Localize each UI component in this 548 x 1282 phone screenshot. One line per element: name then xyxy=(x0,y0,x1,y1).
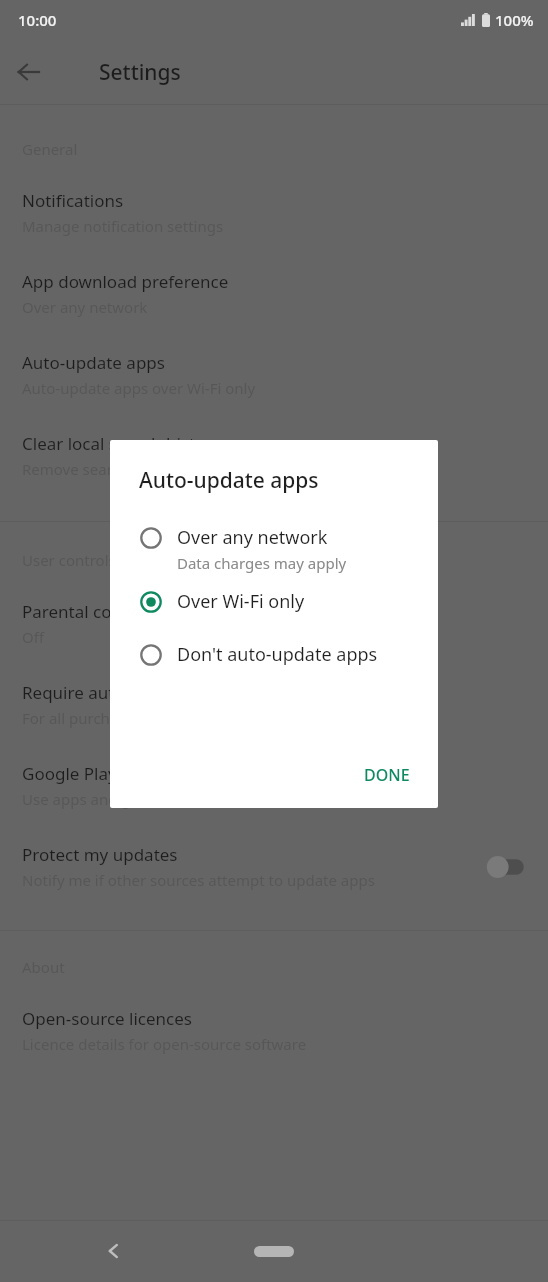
staticText: Open-source licences xyxy=(22,1007,192,1030)
staticText: Auto-update apps over Wi-Fi only xyxy=(22,378,256,398)
staticText: Settings xyxy=(99,58,181,87)
staticText: Remove searches you've performed on this… xyxy=(22,459,375,479)
button[interactable]: Don't auto-update apps xyxy=(110,636,438,673)
staticText: Off xyxy=(22,627,45,647)
staticText: User controls xyxy=(22,550,116,570)
button[interactable]: Protect my updates xyxy=(0,833,548,914)
staticText: General xyxy=(22,139,78,159)
button[interactable]: Home xyxy=(254,1246,294,1257)
button[interactable]: Back xyxy=(94,1231,134,1271)
staticText: Auto-update apps xyxy=(139,466,319,495)
staticText: Require authentication for purchases xyxy=(22,681,319,704)
button[interactable]: Protect my updates xyxy=(486,854,530,880)
staticText: Protect my updates xyxy=(22,843,178,866)
staticText: About xyxy=(22,957,65,977)
staticText: Over any network xyxy=(22,297,148,317)
button[interactable]: Auto-update apps xyxy=(0,341,548,422)
staticText: Over any network xyxy=(177,525,328,550)
button[interactable]: Clear local search history xyxy=(0,422,548,503)
staticText: 100% xyxy=(495,10,534,30)
button[interactable]: Over any network xyxy=(110,519,438,579)
staticText: Clear local search history xyxy=(22,432,222,455)
staticText: Over Wi-Fi only xyxy=(177,589,305,614)
staticText: Don't auto-update apps xyxy=(177,642,378,667)
staticText: DONE xyxy=(364,764,410,786)
button[interactable]: DONE xyxy=(350,754,424,796)
button[interactable]: Require authentication for purchases xyxy=(0,671,548,752)
staticText: Notify me if other sources attempt to up… xyxy=(22,870,375,890)
staticText: 10:00 xyxy=(18,10,57,30)
staticText: Data charges may apply xyxy=(177,553,347,573)
staticText: Google Play Instant xyxy=(22,762,178,785)
button[interactable]: Over Wi-Fi only xyxy=(110,583,438,620)
button[interactable]: Notifications xyxy=(0,179,548,260)
staticText: App download preference xyxy=(22,270,229,293)
staticText: Manage notification settings xyxy=(22,216,224,236)
staticText: Licence details for open-source software xyxy=(22,1034,307,1054)
button[interactable]: Back xyxy=(0,44,56,100)
button[interactable]: Open-source licences xyxy=(0,997,548,1078)
button[interactable]: Parental controls xyxy=(0,590,548,671)
staticText: Use apps and games without installation xyxy=(22,789,309,809)
staticText: Parental controls xyxy=(22,600,158,623)
staticText: Notifications xyxy=(22,189,124,212)
staticText: For all purchases through Google Play on… xyxy=(22,708,391,728)
button[interactable]: Google Play Instant xyxy=(0,752,548,833)
staticText: Auto-update apps xyxy=(22,351,165,374)
button[interactable]: App download preference xyxy=(0,260,548,341)
